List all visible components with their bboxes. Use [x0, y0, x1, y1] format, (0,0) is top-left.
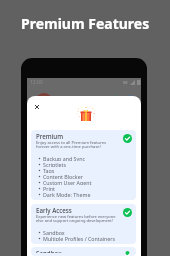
staticText: Backup and Sync — [43, 155, 85, 161]
staticText: Premium Features — [21, 14, 150, 33]
staticText: Premium — [36, 132, 64, 140]
staticText: Multiple Profiles / Containers — [43, 235, 116, 241]
staticText: Early Access — [36, 206, 72, 214]
staticText: 12:00 — [30, 79, 43, 86]
button[interactable]: Close — [30, 100, 43, 113]
staticText: Custom User Agent — [43, 179, 92, 185]
staticText: Enjoy access to all Premium features for… — [36, 140, 107, 150]
staticText: Dark Mode: Theme — [43, 191, 91, 197]
staticText: Tags — [43, 167, 55, 173]
button[interactable]: Sandbox — [31, 247, 136, 256]
staticText: Experience new features before everyone … — [36, 214, 116, 224]
staticText: Content Blocker — [43, 173, 83, 179]
button[interactable]: Early Access — [31, 204, 136, 244]
staticText: Sandbox — [43, 229, 65, 235]
staticText: Scriptlets — [43, 161, 66, 167]
button[interactable]: Premium — [31, 130, 136, 200]
staticText: Print — [43, 185, 55, 191]
staticText: Sandbox — [36, 249, 62, 253]
